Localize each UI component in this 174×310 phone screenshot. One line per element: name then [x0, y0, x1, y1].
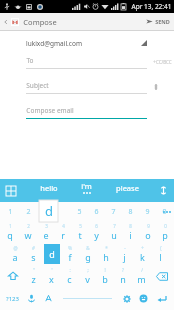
button[interactable]: Space	[57, 287, 118, 310]
button[interactable]: @	[5, 243, 24, 265]
staticText: m	[137, 273, 146, 285]
button[interactable]: 4	[54, 221, 71, 243]
staticText: &	[86, 245, 90, 251]
button[interactable]: ?	[114, 265, 132, 287]
button[interactable]: 8	[122, 202, 139, 221]
button[interactable]: 0	[156, 202, 173, 221]
button[interactable]: Enter	[152, 287, 172, 310]
button[interactable]: please	[112, 181, 143, 195]
staticText: 7	[111, 207, 116, 217]
staticText: i	[129, 229, 132, 241]
staticText: #	[32, 245, 35, 251]
button[interactable]: ;	[78, 265, 96, 287]
button[interactable]: :	[60, 265, 78, 287]
staticText: k	[140, 251, 145, 263]
staticText: 1	[9, 223, 12, 229]
button[interactable]: 7	[105, 202, 122, 221]
button[interactable]: Shift	[1, 265, 24, 287]
staticText: Compose email	[26, 106, 74, 115]
other: Back	[3, 19, 9, 25]
button[interactable]: ?123	[2, 287, 23, 310]
button[interactable]: 2	[19, 202, 37, 221]
button[interactable]: 5	[71, 221, 88, 243]
button[interactable]: To	[0, 54, 174, 70]
staticText: :	[69, 267, 71, 273]
button[interactable]: Subject	[0, 79, 174, 95]
button[interactable]: (	[151, 243, 169, 265]
button[interactable]: Send	[142, 18, 174, 25]
staticText: *	[105, 245, 108, 251]
button[interactable]: Expand suggestions	[158, 185, 169, 196]
button[interactable]: 6	[88, 221, 105, 243]
staticText: ?123	[6, 295, 19, 303]
button[interactable]: /	[132, 265, 150, 287]
button[interactable]: Compose email	[0, 104, 174, 120]
staticText: 6	[94, 207, 99, 217]
button[interactable]: 1	[1, 221, 19, 243]
staticText: 5	[77, 207, 82, 217]
staticText: i'm	[81, 181, 92, 191]
button[interactable]: 6	[88, 202, 105, 221]
staticText: Compose	[23, 17, 57, 27]
staticText: SEND	[155, 18, 170, 25]
button[interactable]	[54, 202, 71, 221]
staticText: 2	[26, 207, 31, 217]
staticText: e	[43, 229, 49, 241]
staticText: 4	[62, 223, 65, 229]
button[interactable]: 9	[139, 202, 156, 221]
button[interactable]: &	[79, 243, 97, 265]
staticText: z	[31, 273, 36, 285]
other: Attach	[152, 83, 160, 91]
staticText: lukixd@gmail.com	[26, 39, 82, 48]
staticText: (	[160, 245, 162, 251]
button[interactable]: i'm	[77, 179, 96, 196]
staticText: w	[24, 229, 32, 241]
staticText: 5	[79, 223, 82, 229]
button[interactable]: #	[24, 243, 43, 265]
button[interactable]: 9	[139, 221, 156, 243]
button[interactable]: hello	[36, 181, 62, 195]
button[interactable]: +	[133, 243, 151, 265]
button[interactable]: Delete	[150, 265, 173, 287]
button[interactable]	[37, 202, 54, 221]
button[interactable]: 8	[122, 221, 139, 243]
button[interactable]: Voice input	[23, 287, 40, 310]
staticText: b	[102, 273, 108, 285]
staticText: 9	[147, 223, 150, 229]
staticText: please	[116, 183, 139, 193]
button[interactable]: %	[61, 243, 79, 265]
staticText: To	[26, 56, 34, 65]
staticText: 0	[164, 223, 167, 229]
button[interactable]: lukixd@gmail.com	[0, 36, 174, 50]
button[interactable]: "	[24, 265, 42, 287]
button[interactable]: '	[42, 265, 60, 287]
button[interactable]: 7	[105, 221, 122, 243]
staticText: f	[68, 251, 72, 263]
staticText: !	[104, 267, 106, 273]
staticText: 0	[162, 207, 167, 217]
staticText: x	[49, 273, 54, 285]
staticText: d	[49, 248, 55, 260]
button[interactable]: 0	[156, 221, 173, 243]
button[interactable]: Keyboard modes	[5, 185, 17, 197]
button[interactable]: 2	[19, 221, 37, 243]
button[interactable]: 1	[1, 202, 19, 221]
button[interactable]: Back	[0, 17, 61, 27]
button[interactable]: 5	[71, 202, 88, 221]
staticText: l	[159, 251, 162, 263]
button[interactable]: d	[43, 243, 61, 265]
button[interactable]: !	[96, 265, 114, 287]
button[interactable]: Emoji	[135, 287, 152, 310]
button[interactable]: 3	[37, 221, 54, 243]
button[interactable]: Settings	[118, 287, 135, 310]
staticText: t	[78, 229, 82, 241]
button[interactable]: *	[97, 243, 115, 265]
other: Send	[146, 18, 153, 25]
staticText: +CC/BCC	[153, 59, 172, 65]
staticText: /	[141, 267, 143, 273]
staticText: Apr 13, 22:41	[131, 2, 172, 11]
staticText: '	[51, 267, 53, 273]
button[interactable]: Handwriting	[40, 287, 57, 310]
button[interactable]: -	[115, 243, 133, 265]
staticText: Subject	[26, 81, 49, 90]
